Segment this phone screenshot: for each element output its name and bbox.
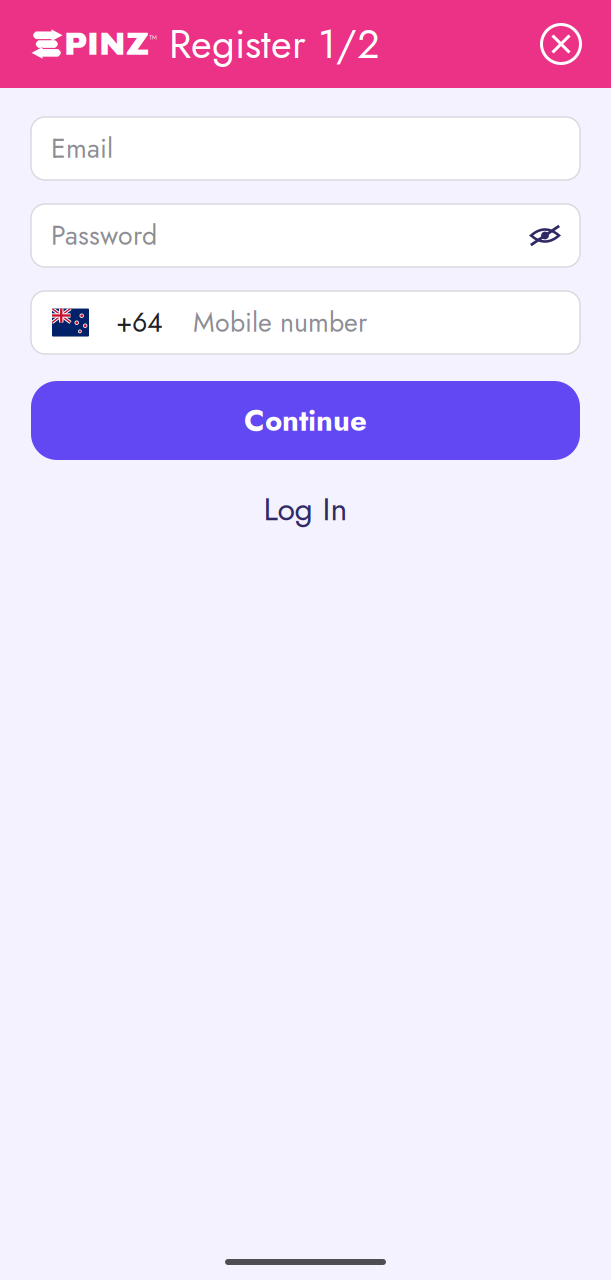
staticText: +64 <box>116 303 163 342</box>
button[interactable]: Continue <box>31 381 580 460</box>
staticText: Mobile number <box>193 303 367 342</box>
button[interactable]: Show password <box>530 224 560 246</box>
staticText: Register 1/2 <box>169 15 380 73</box>
staticText: PINZ <box>64 27 149 61</box>
staticText: Continue <box>244 399 367 442</box>
button[interactable]: Log In <box>239 480 371 538</box>
staticText: ™ <box>149 31 157 48</box>
staticText: Password <box>51 216 157 255</box>
staticText: Email <box>51 129 113 168</box>
staticText: Log In <box>263 486 347 532</box>
button[interactable]: Close <box>540 23 582 65</box>
